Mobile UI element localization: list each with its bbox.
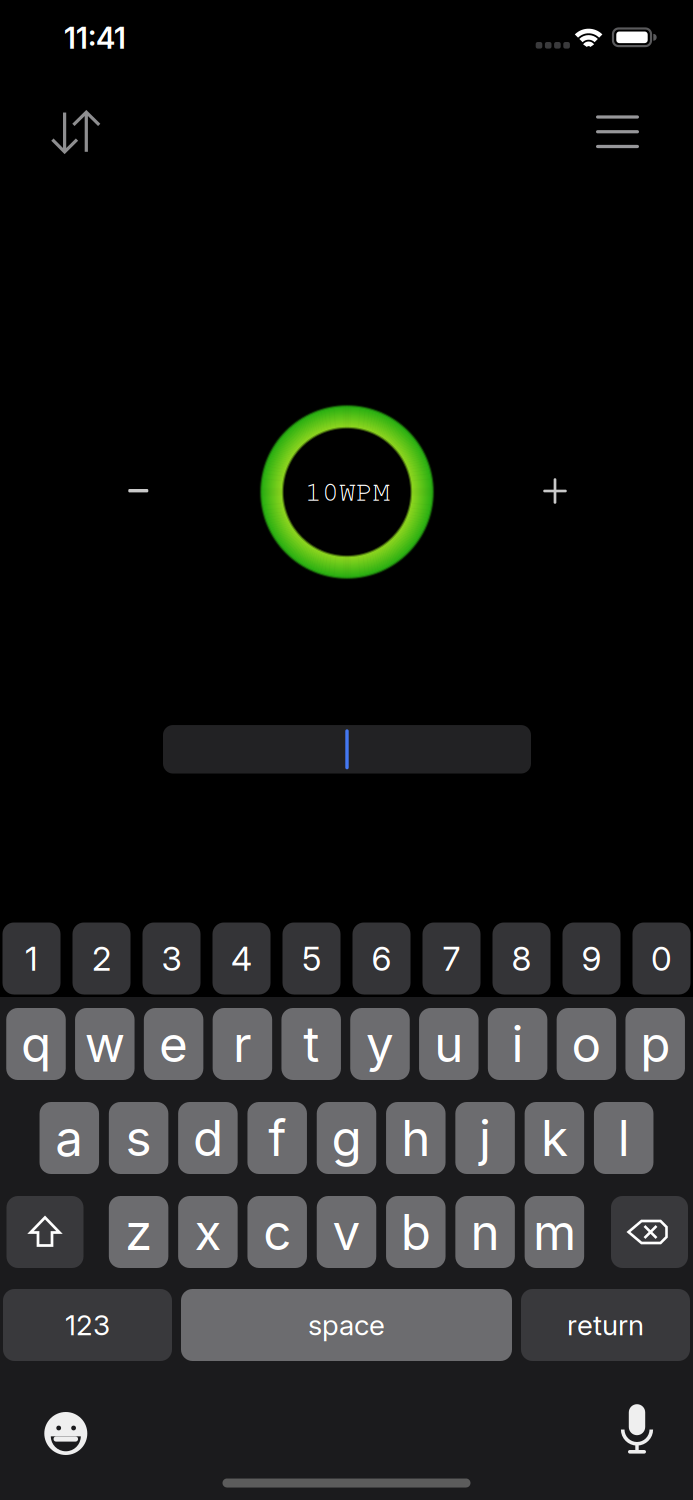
staticText: 4	[231, 939, 252, 978]
staticText: return	[567, 1308, 644, 1341]
button[interactable]: Increase speed	[533, 469, 577, 513]
staticText: m	[533, 1203, 576, 1261]
button[interactable]: 3	[142, 922, 200, 994]
staticText: i	[512, 1015, 524, 1073]
button[interactable]: k	[525, 1102, 584, 1174]
button[interactable]: m	[525, 1196, 584, 1268]
staticText: n	[471, 1203, 500, 1261]
staticText: g	[331, 1109, 361, 1167]
staticText: r	[233, 1015, 252, 1073]
button[interactable]: c	[247, 1196, 307, 1268]
button[interactable]: a	[39, 1102, 99, 1174]
button[interactable]: 9	[562, 922, 620, 994]
button[interactable]: l	[594, 1102, 653, 1174]
staticText: 11:41	[64, 21, 126, 55]
button[interactable]: p	[625, 1008, 685, 1080]
button[interactable]: Shift	[6, 1196, 83, 1268]
staticText: 2	[92, 939, 111, 978]
button[interactable]: Decrease speed	[116, 469, 160, 513]
button[interactable]: q	[6, 1008, 66, 1080]
staticText: l	[618, 1109, 630, 1167]
button[interactable]: r	[213, 1008, 272, 1080]
staticText: f	[268, 1109, 286, 1167]
button[interactable]: z	[109, 1196, 168, 1268]
button[interactable]: return	[521, 1289, 690, 1361]
button[interactable]: 7	[422, 922, 480, 994]
button[interactable]: w	[75, 1008, 134, 1080]
button[interactable]: Emoji	[44, 1412, 87, 1455]
staticText: u	[434, 1015, 463, 1073]
staticText: q	[21, 1015, 51, 1073]
staticText: 8	[511, 939, 531, 978]
button[interactable]: i	[488, 1008, 547, 1080]
staticText: t	[303, 1015, 319, 1073]
staticText: space	[308, 1308, 385, 1341]
button[interactable]: 8	[492, 922, 550, 994]
staticText: v	[332, 1203, 360, 1261]
button[interactable]: 0	[632, 922, 690, 994]
button[interactable]: 123	[3, 1289, 172, 1361]
staticText: h	[401, 1109, 430, 1167]
button[interactable]: Delete	[611, 1196, 688, 1268]
staticText: 7	[442, 939, 460, 978]
staticText: 10WPM	[305, 474, 390, 508]
staticText: 3	[161, 939, 181, 978]
button[interactable]: 2	[72, 922, 130, 994]
button[interactable]: y	[350, 1008, 410, 1080]
button[interactable]: h	[386, 1102, 446, 1174]
staticText: y	[366, 1015, 394, 1073]
button[interactable]: Swap mode	[48, 106, 104, 158]
button[interactable]: d	[178, 1102, 238, 1174]
button[interactable]: f	[247, 1102, 307, 1174]
button[interactable]: 6	[352, 922, 410, 994]
button[interactable]: x	[178, 1196, 238, 1268]
button[interactable]: u	[419, 1008, 478, 1080]
button[interactable]: s	[109, 1102, 168, 1174]
staticText: 6	[371, 939, 391, 978]
staticText: z	[125, 1203, 152, 1261]
staticText: j	[479, 1109, 491, 1167]
button[interactable]: space	[181, 1289, 512, 1361]
button[interactable]: t	[281, 1008, 341, 1080]
staticText: d	[193, 1109, 223, 1167]
staticText: e	[159, 1015, 188, 1073]
staticText: k	[541, 1109, 568, 1167]
button[interactable]: 5	[282, 922, 340, 994]
staticText: p	[640, 1015, 670, 1073]
button[interactable]: b	[386, 1196, 445, 1268]
staticText: s	[126, 1109, 152, 1167]
button[interactable]: g	[317, 1102, 376, 1174]
button[interactable]: v	[317, 1196, 376, 1268]
button[interactable]: Menu	[594, 111, 641, 152]
button[interactable]: n	[455, 1196, 515, 1268]
staticText: 0	[651, 939, 672, 978]
staticText: 9	[581, 939, 601, 978]
staticText: 123	[65, 1308, 110, 1341]
button[interactable]: o	[557, 1008, 616, 1080]
button[interactable]: 1	[2, 922, 60, 994]
button[interactable]: j	[455, 1102, 515, 1174]
staticText: w	[85, 1015, 125, 1073]
staticText: b	[401, 1203, 431, 1261]
staticText: 5	[302, 939, 321, 978]
button[interactable]: e	[144, 1008, 203, 1080]
staticText: x	[194, 1203, 221, 1261]
staticText: a	[55, 1109, 83, 1167]
button[interactable]: 4	[212, 922, 270, 994]
staticText: 1	[25, 939, 38, 978]
staticText: o	[571, 1015, 601, 1073]
button[interactable]: Dictate	[615, 1407, 659, 1457]
staticText: c	[263, 1203, 291, 1261]
button[interactable]: Text input	[163, 725, 531, 773]
